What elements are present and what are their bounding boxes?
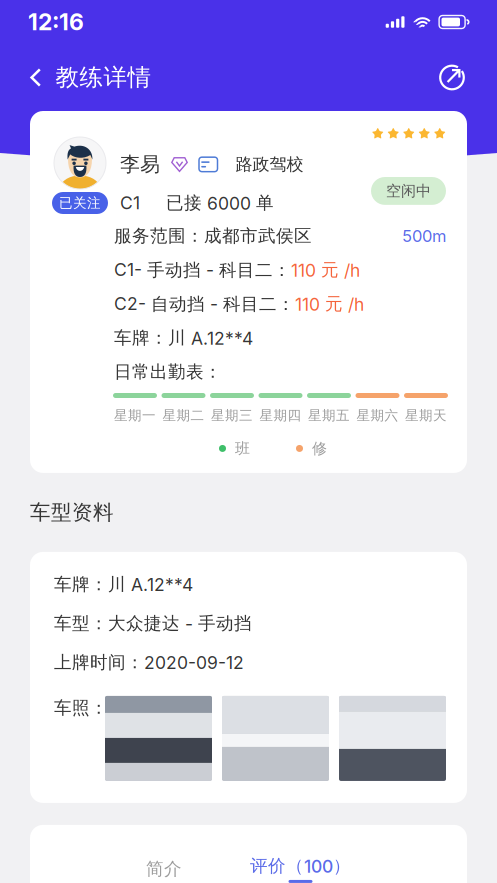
staticText: 星期四 — [259, 407, 301, 424]
button[interactable]: 评价（100） — [250, 848, 351, 883]
staticText: 空闲中 — [386, 181, 431, 200]
staticText: 车型：大众捷达 - 手动挡 — [54, 612, 252, 634]
staticText: C1- 手动挡 - 科目二： — [114, 259, 291, 281]
staticText: 星期三 — [211, 407, 253, 424]
staticText: 简介 — [146, 858, 182, 880]
button[interactable]: 教练详情 — [30, 55, 151, 100]
staticText: 修 — [312, 439, 327, 458]
button[interactable]: 已关注 — [52, 192, 108, 214]
staticText: 110 元 /h — [291, 259, 360, 281]
staticText: 已关注 — [59, 194, 101, 211]
staticText: 星期五 — [308, 407, 350, 424]
staticText: 500m — [402, 226, 446, 246]
button[interactable]: 简介 — [146, 848, 182, 883]
staticText: 日常出勤表： — [114, 361, 222, 383]
staticText: 车照： — [54, 697, 108, 719]
staticText: 教练详情 — [55, 63, 151, 92]
staticText: 星期六 — [356, 407, 398, 424]
staticText: 车型资料 — [30, 499, 114, 525]
staticText: 车牌：川 A.12**4 — [114, 327, 253, 349]
staticText: 12:16 — [28, 8, 84, 36]
staticText: 星期一 — [114, 407, 156, 424]
staticText: 评价（100） — [250, 855, 351, 877]
staticText: C2- 自动挡 - 科目二： — [114, 293, 295, 315]
staticText: 车牌：川 A.12**4 — [54, 573, 193, 595]
staticText: 服务范围：成都市武侯区 — [114, 225, 312, 247]
staticText: 上牌时间：2020-09-12 — [54, 651, 244, 673]
staticText: 110 元 /h — [295, 293, 364, 315]
staticText: 李易 — [120, 152, 160, 177]
staticText: 星期二 — [162, 407, 204, 424]
staticText: 已接 6000 单 — [166, 192, 274, 214]
staticText: 路政驾校 — [235, 154, 303, 175]
button[interactable]: Share — [437, 62, 467, 93]
staticText: 星期天 — [405, 407, 447, 424]
staticText: C1 — [120, 192, 140, 214]
staticText: 班 — [235, 439, 250, 458]
